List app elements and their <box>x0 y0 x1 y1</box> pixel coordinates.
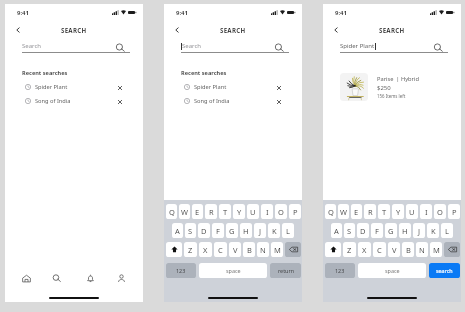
button[interactable]: O <box>434 204 446 219</box>
button[interactable]: U <box>406 204 418 219</box>
staticText: space <box>226 267 241 274</box>
button[interactable]: Song of India <box>22 96 130 106</box>
button[interactable]: M <box>271 242 283 257</box>
button[interactable]: Remove Spider Plant <box>274 83 283 92</box>
button[interactable]: C <box>214 242 227 257</box>
button[interactable]: return <box>270 263 301 278</box>
button[interactable]: V <box>229 242 241 257</box>
button[interactable]: Spider Plant <box>22 82 130 92</box>
button[interactable]: D <box>357 223 369 238</box>
button[interactable]: Song of India <box>181 96 289 106</box>
button[interactable]: P <box>289 204 301 219</box>
button[interactable]: Spider Plant <box>181 82 289 92</box>
button[interactable]: Q <box>166 204 177 219</box>
button[interactable]: 123 <box>166 263 196 278</box>
button[interactable]: Shift <box>325 242 341 257</box>
staticText: Y <box>396 207 401 217</box>
staticText: L <box>286 226 290 236</box>
button[interactable]: U <box>247 204 259 219</box>
button[interactable]: Search <box>22 42 41 50</box>
button[interactable]: Remove Song of India <box>115 97 124 106</box>
button[interactable]: P <box>448 204 460 219</box>
staticText: P <box>293 207 298 217</box>
button[interactable]: K <box>427 223 439 238</box>
button[interactable]: Y <box>233 204 245 219</box>
button[interactable]: A <box>331 223 342 238</box>
button[interactable]: L <box>441 223 453 238</box>
button[interactable]: V <box>388 242 400 257</box>
button[interactable]: H <box>240 223 252 238</box>
button[interactable]: L <box>282 223 294 238</box>
button[interactable]: Search <box>433 43 443 53</box>
button[interactable]: Search <box>115 43 125 53</box>
button[interactable]: X <box>199 242 212 257</box>
button[interactable]: M <box>430 242 442 257</box>
button[interactable]: space <box>358 263 426 278</box>
staticText: $250 <box>377 84 391 92</box>
button[interactable]: H <box>399 223 411 238</box>
button[interactable]: Search <box>274 43 284 53</box>
button[interactable]: N <box>416 242 428 257</box>
button[interactable]: Backspace <box>444 242 460 257</box>
button[interactable]: O <box>275 204 287 219</box>
button[interactable]: E <box>351 204 362 219</box>
button[interactable]: Backspace <box>285 242 301 257</box>
button[interactable]: space <box>199 263 267 278</box>
button[interactable]: Profile <box>114 271 128 285</box>
button[interactable]: A <box>172 223 183 238</box>
button[interactable]: Back <box>11 23 25 37</box>
button[interactable]: Remove Spider Plant <box>115 83 124 92</box>
staticText: Q <box>169 207 175 217</box>
button[interactable]: C <box>373 242 386 257</box>
button[interactable]: W <box>179 204 190 219</box>
button[interactable]: Notifications <box>83 271 97 285</box>
button[interactable]: W <box>338 204 349 219</box>
button[interactable]: Parise | Hybrid <box>340 73 448 101</box>
button[interactable]: T <box>378 204 390 219</box>
button[interactable]: J <box>254 223 266 238</box>
button[interactable]: J <box>413 223 425 238</box>
staticText: F <box>375 226 379 236</box>
button[interactable]: search <box>429 263 460 278</box>
button[interactable]: F <box>212 223 224 238</box>
button[interactable]: I <box>261 204 273 219</box>
button[interactable]: Remove Song of India <box>274 97 283 106</box>
staticText: O <box>278 207 284 217</box>
button[interactable]: Shift <box>166 242 182 257</box>
button[interactable]: B <box>402 242 414 257</box>
button[interactable]: Y <box>392 204 404 219</box>
button[interactable]: G <box>226 223 238 238</box>
staticText: return <box>278 267 294 274</box>
button[interactable]: I <box>420 204 432 219</box>
button[interactable]: Spider Plant <box>340 42 375 50</box>
staticText: V <box>392 245 397 255</box>
button[interactable]: B <box>243 242 255 257</box>
button[interactable]: S <box>185 223 196 238</box>
button[interactable]: Back <box>170 23 184 37</box>
button[interactable]: Back <box>329 23 343 37</box>
button[interactable]: T <box>219 204 231 219</box>
staticText: X <box>203 245 208 255</box>
staticText: U <box>409 207 415 217</box>
button[interactable]: R <box>205 204 217 219</box>
button[interactable]: F <box>371 223 383 238</box>
button[interactable]: D <box>198 223 210 238</box>
button[interactable]: Q <box>325 204 336 219</box>
button[interactable]: Search <box>49 271 63 285</box>
button[interactable]: G <box>385 223 397 238</box>
button[interactable]: X <box>358 242 371 257</box>
button[interactable]: Z <box>184 242 197 257</box>
staticText: W <box>181 207 188 217</box>
button[interactable]: Z <box>343 242 356 257</box>
button[interactable]: 123 <box>325 263 355 278</box>
button[interactable]: N <box>257 242 269 257</box>
staticText: Parise | Hybrid <box>377 75 419 83</box>
button[interactable]: Search <box>182 42 201 50</box>
button[interactable]: K <box>268 223 280 238</box>
button[interactable]: E <box>192 204 203 219</box>
button[interactable]: R <box>364 204 376 219</box>
button[interactable]: S <box>344 223 355 238</box>
staticText: N <box>260 245 266 255</box>
button[interactable]: Home <box>19 271 33 285</box>
staticText: R <box>209 207 214 217</box>
